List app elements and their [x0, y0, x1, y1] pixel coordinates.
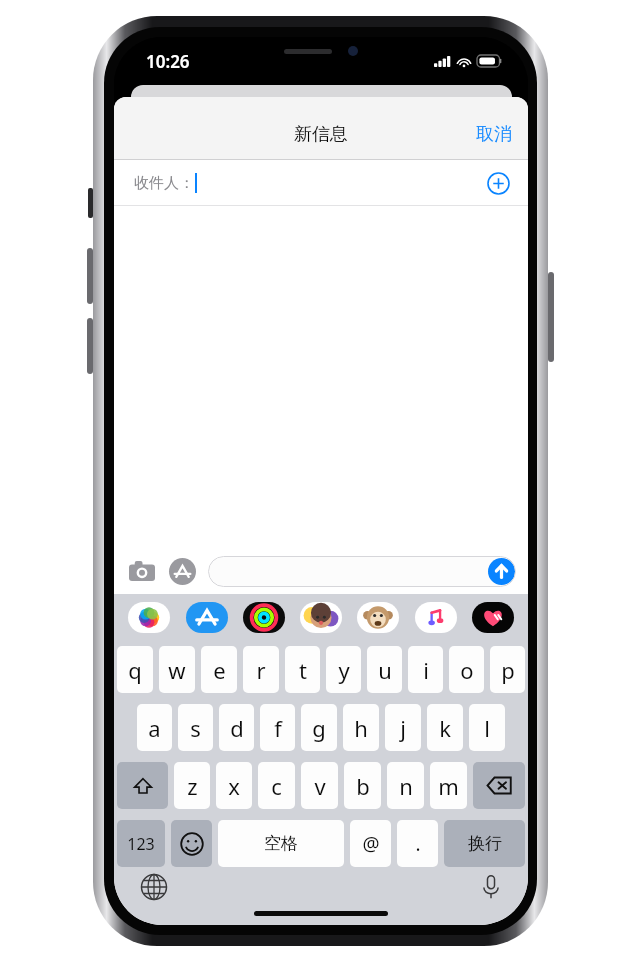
staticText: o — [460, 655, 474, 685]
button[interactable]: f — [260, 704, 295, 751]
button[interactable]: l — [469, 704, 505, 751]
staticText: i — [423, 655, 429, 685]
button[interactable]: Digital Touch — [471, 601, 515, 634]
button[interactable]: s — [178, 704, 213, 751]
button[interactable]: Memoji — [299, 601, 343, 634]
button[interactable]: y — [326, 646, 361, 693]
staticText: 取消 — [476, 123, 512, 146]
button[interactable]: App Store — [166, 555, 198, 587]
staticText: x — [228, 771, 240, 801]
staticText: v — [314, 771, 326, 801]
button[interactable]: Photos — [127, 601, 171, 634]
button[interactable]: 取消 — [460, 117, 528, 152]
button[interactable]: x — [216, 762, 252, 809]
staticText: a — [148, 713, 161, 743]
button[interactable]: i — [408, 646, 443, 693]
button[interactable]: v — [301, 762, 338, 809]
staticText: f — [274, 713, 282, 743]
staticText: w — [168, 655, 186, 685]
staticText: j — [400, 713, 406, 743]
button[interactable]: 收件人： — [114, 160, 528, 206]
staticText: c — [271, 771, 282, 801]
staticText: k — [439, 713, 451, 743]
staticText: d — [230, 713, 244, 743]
staticText: 收件人： — [134, 174, 194, 193]
button[interactable]: Music — [414, 601, 458, 634]
button[interactable]: Animoji — [356, 601, 400, 634]
staticText: u — [378, 655, 392, 685]
staticText: g — [312, 713, 326, 743]
button[interactable]: n — [387, 762, 424, 809]
button[interactable]: Change keyboard — [140, 873, 168, 901]
button[interactable]: Camera — [126, 555, 158, 587]
button[interactable]: Send — [208, 556, 516, 587]
staticText: h — [354, 713, 368, 743]
staticText: y — [338, 655, 350, 685]
button[interactable]: k — [427, 704, 463, 751]
button[interactable]: z — [174, 762, 210, 809]
button[interactable]: e — [201, 646, 237, 693]
button[interactable]: Backspace — [473, 762, 525, 809]
staticText: t — [299, 655, 307, 685]
button[interactable]: 空格 — [218, 820, 344, 867]
staticText: r — [256, 655, 266, 685]
button[interactable]: @ — [350, 820, 391, 867]
button[interactable]: 换行 — [444, 820, 525, 867]
button[interactable]: o — [449, 646, 484, 693]
button[interactable]: h — [343, 704, 379, 751]
button[interactable]: u — [367, 646, 402, 693]
button[interactable]: 123 — [117, 820, 165, 867]
button[interactable]: a — [137, 704, 172, 751]
button[interactable]: Emoji — [171, 820, 212, 867]
button[interactable]: Send — [488, 558, 515, 585]
button[interactable]: Add contact — [487, 172, 510, 195]
button[interactable]: Activity — [242, 601, 286, 634]
button[interactable]: p — [490, 646, 525, 693]
button[interactable]: j — [385, 704, 421, 751]
staticText: 10:26 — [146, 50, 190, 73]
staticText: s — [190, 713, 201, 743]
button[interactable]: r — [243, 646, 279, 693]
button[interactable]: d — [219, 704, 254, 751]
staticText: q — [128, 655, 142, 685]
button[interactable]: App Store — [185, 601, 229, 634]
staticText: 新信息 — [294, 123, 348, 146]
button[interactable]: . — [397, 820, 438, 867]
staticText: 123 — [127, 833, 155, 855]
button[interactable]: m — [430, 762, 467, 809]
button[interactable]: q — [117, 646, 153, 693]
button[interactable]: g — [301, 704, 337, 751]
button[interactable]: Shift — [117, 762, 168, 809]
button[interactable]: t — [285, 646, 320, 693]
button[interactable]: c — [258, 762, 295, 809]
staticText: . — [415, 831, 421, 857]
staticText: e — [213, 655, 226, 685]
button[interactable]: b — [344, 762, 381, 809]
staticText: l — [484, 713, 490, 743]
staticText: n — [399, 771, 413, 801]
staticText: p — [501, 655, 515, 685]
staticText: 换行 — [468, 833, 502, 854]
button[interactable]: w — [159, 646, 195, 693]
staticText: b — [356, 771, 370, 801]
button[interactable]: Dictation — [480, 873, 502, 901]
staticText: m — [438, 771, 459, 801]
staticText: 空格 — [264, 833, 298, 854]
staticText: z — [187, 771, 198, 801]
staticText: @ — [362, 831, 380, 857]
